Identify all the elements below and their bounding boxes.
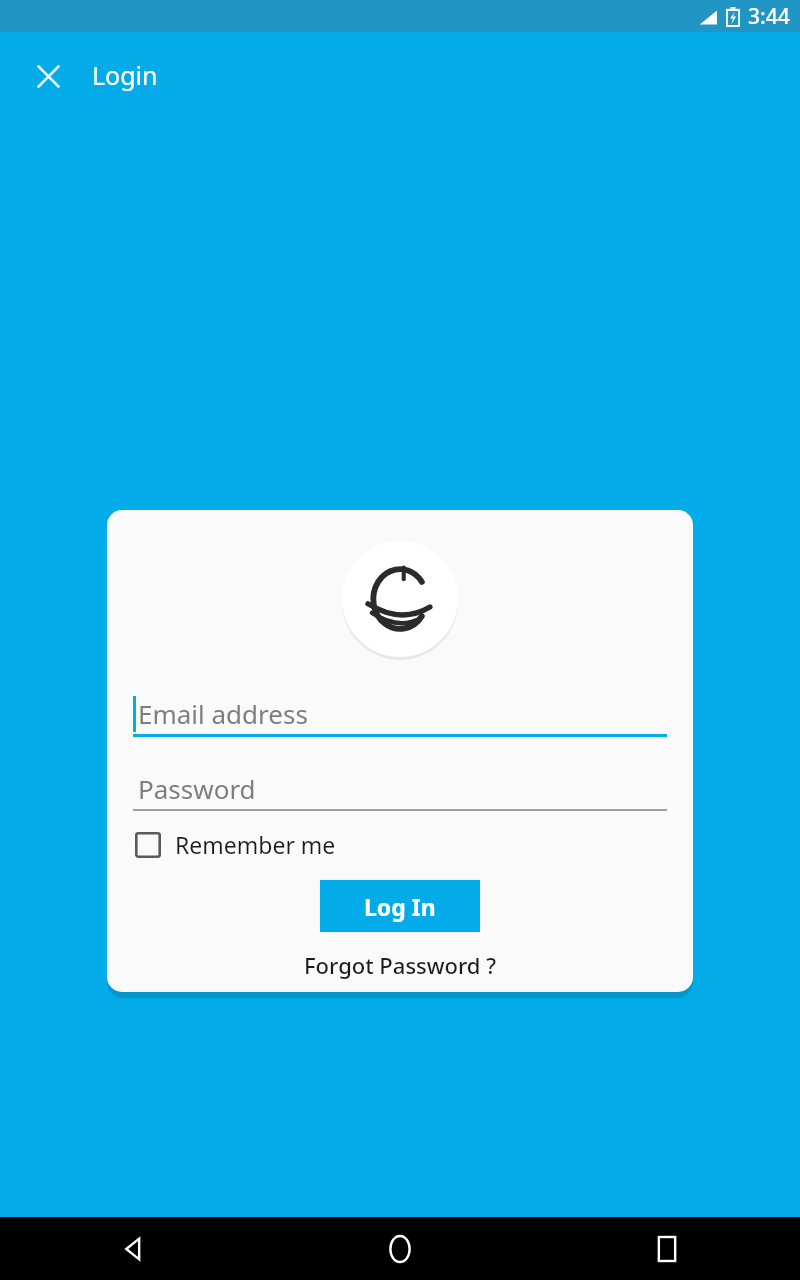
button[interactable]: Back	[0, 1217, 266, 1280]
staticText: Login	[92, 58, 158, 92]
button[interactable]: Remember me	[133, 825, 338, 864]
staticText: Email address	[138, 696, 308, 731]
button[interactable]: Password	[133, 767, 667, 811]
button[interactable]: Home	[266, 1217, 533, 1280]
button[interactable]: Recent apps	[533, 1217, 800, 1280]
button[interactable]: Forgot Password ?	[296, 948, 505, 982]
staticText: Password	[138, 771, 256, 806]
staticText: Log In	[364, 891, 436, 922]
staticText: 3:44	[748, 2, 790, 31]
button[interactable]: Close	[20, 48, 76, 104]
staticText: Forgot Password ?	[304, 950, 497, 980]
staticText: Remember me	[175, 829, 336, 860]
button[interactable]: Log In	[320, 880, 480, 932]
button[interactable]: Email address	[133, 692, 667, 737]
